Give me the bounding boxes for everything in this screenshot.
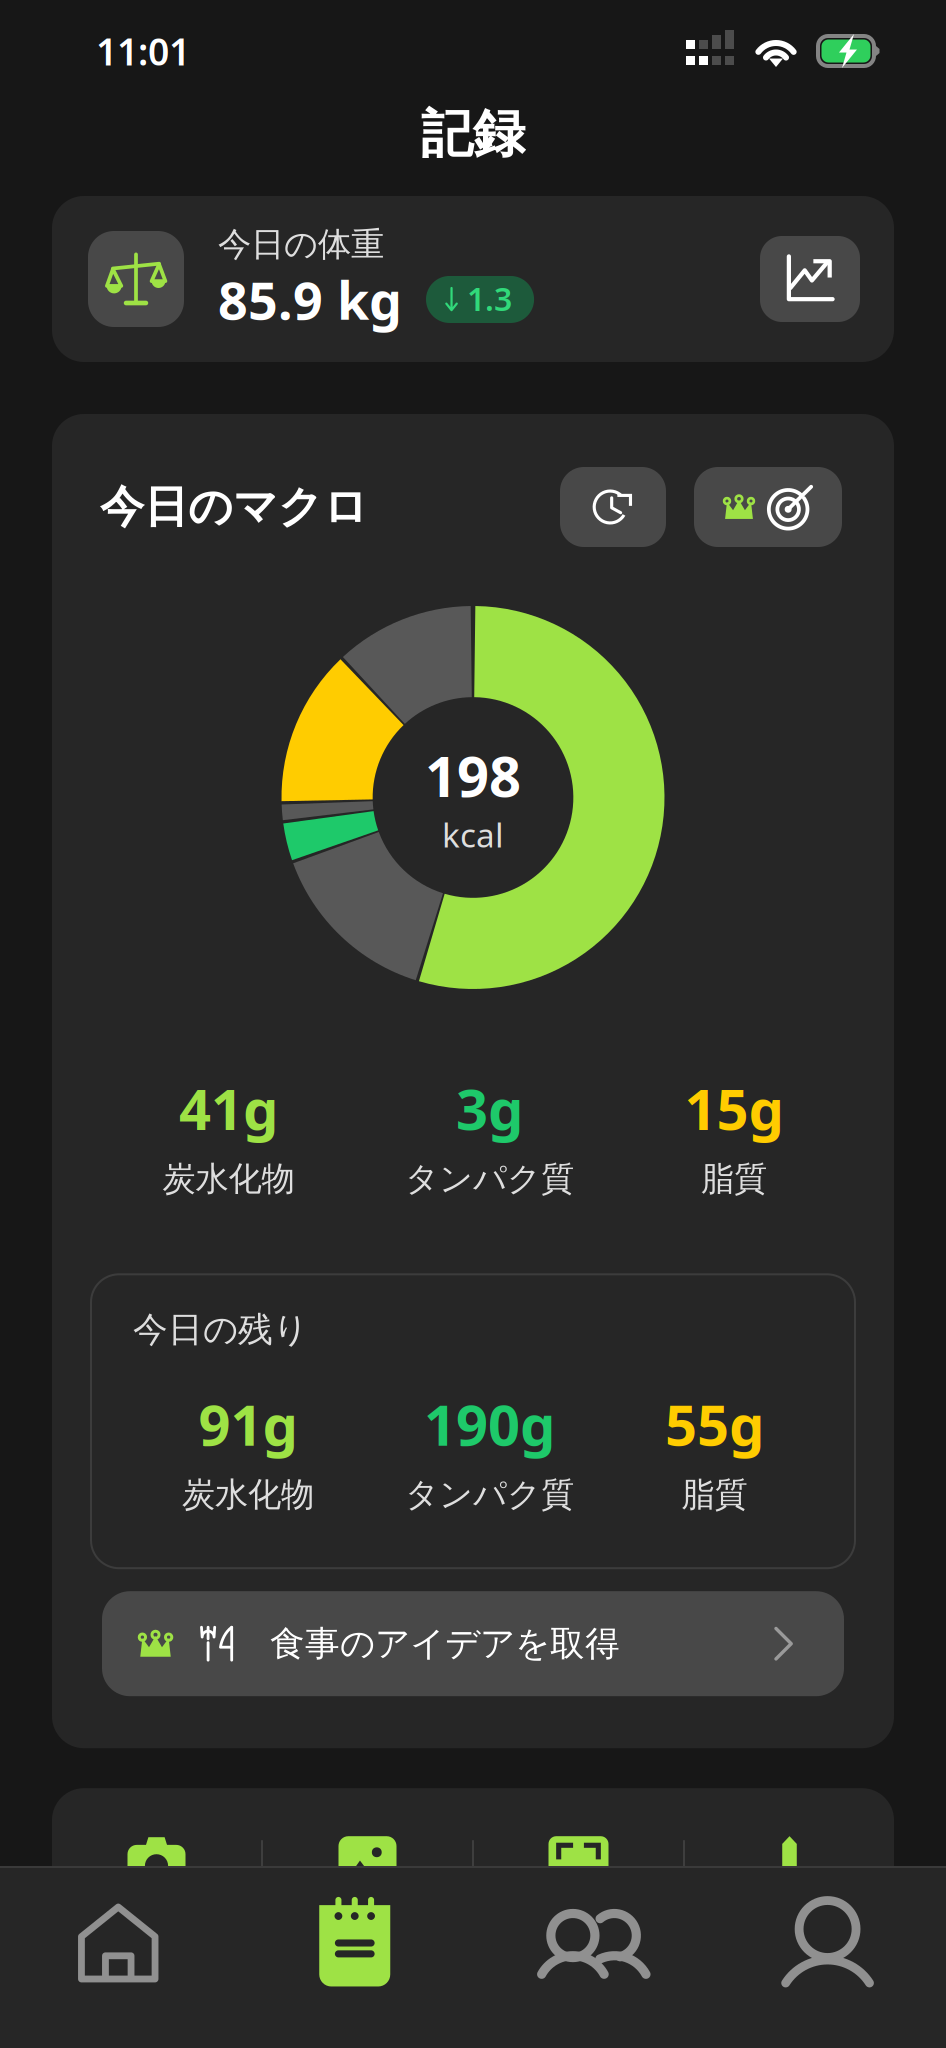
staticText: 190g xyxy=(424,1387,555,1461)
button[interactable]: 履歴 xyxy=(560,467,666,547)
staticText: 3g xyxy=(456,1071,523,1145)
button[interactable]: 体重の推移 xyxy=(760,236,860,322)
button[interactable]: ホーム xyxy=(0,1868,236,2048)
button[interactable]: プロフィール xyxy=(709,1868,946,2048)
staticText: 今日の残り xyxy=(133,1308,308,1351)
staticText: 41g xyxy=(179,1071,278,1145)
button[interactable]: 目標を設定 xyxy=(694,467,842,547)
staticText: 脂質 xyxy=(701,1158,767,1199)
staticText: kcal xyxy=(442,813,504,857)
staticText: 炭水化物 xyxy=(162,1158,294,1199)
button[interactable]: カメラ xyxy=(52,1788,261,1956)
staticText: 食事のアイデアを取得 xyxy=(270,1622,620,1665)
staticText: 脂質 xyxy=(681,1474,747,1515)
button[interactable]: バーコード xyxy=(474,1788,683,1956)
button[interactable]: 食事のアイデアを取得 xyxy=(102,1591,844,1696)
staticText: 1.3 xyxy=(467,277,512,320)
staticText: 今日のマクロ xyxy=(100,480,368,534)
staticText: 85.9 kg xyxy=(218,265,402,334)
button[interactable]: 手入力 xyxy=(685,1788,894,1956)
button[interactable]: 写真 xyxy=(263,1788,472,1956)
button[interactable]: 記録 xyxy=(236,1868,473,2048)
staticText: タンパク質 xyxy=(405,1158,574,1199)
staticText: タンパク質 xyxy=(405,1474,574,1515)
staticText: 今日の体重 xyxy=(218,224,384,265)
staticText: 炭水化物 xyxy=(182,1474,314,1515)
staticText: 198 xyxy=(425,738,521,813)
staticText: 11:01 xyxy=(96,26,190,76)
staticText: 55g xyxy=(665,1387,764,1461)
button[interactable]: コミュニティ xyxy=(473,1868,709,2048)
staticText: 記録 xyxy=(421,102,525,166)
staticText: 15g xyxy=(684,1071,783,1145)
staticText: 91g xyxy=(198,1387,297,1461)
